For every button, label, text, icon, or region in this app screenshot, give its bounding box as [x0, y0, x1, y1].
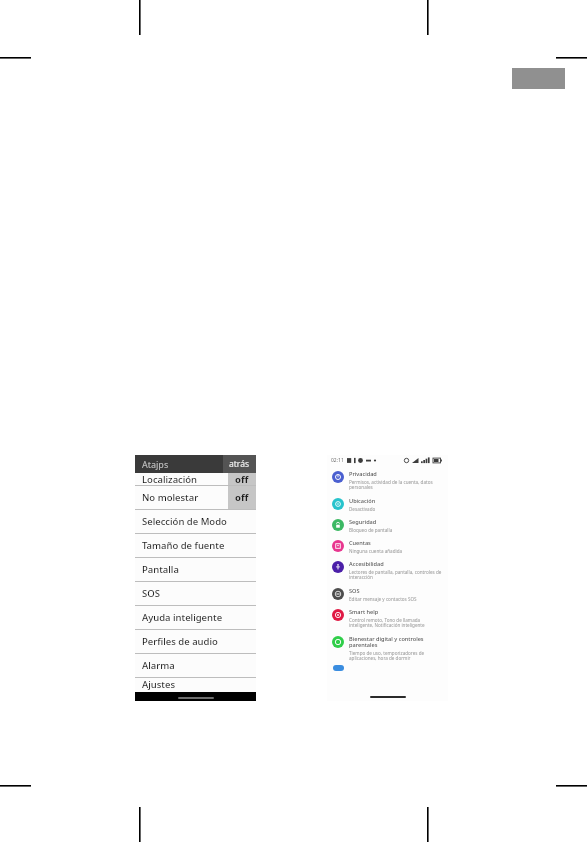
staticText: Ninguna cuenta añadida	[349, 548, 403, 554]
staticText: atrás	[229, 458, 250, 470]
staticText: off	[235, 473, 249, 485]
staticText: Privacidad	[349, 470, 377, 478]
staticText: SOS	[142, 587, 256, 600]
button[interactable]: Setting icon	[327, 515, 448, 536]
button[interactable]: Selección de Modo	[135, 510, 256, 533]
other: Setting icon	[332, 636, 344, 648]
staticText: Ayuda inteligente	[142, 611, 256, 624]
staticText: Ajustes	[142, 678, 256, 690]
button[interactable]: Setting icon	[327, 536, 448, 557]
button[interactable]: Alarma	[135, 654, 256, 677]
staticText: Tiempo de uso, temporizadores de aplicac…	[349, 650, 443, 662]
staticText: Alarma	[142, 659, 256, 672]
staticText: Accesibilidad	[349, 560, 384, 568]
staticText: Ubicación	[349, 497, 376, 505]
staticText: Seguridad	[349, 518, 377, 526]
button[interactable]: Pantalla	[135, 558, 256, 581]
button[interactable]: Setting icon	[327, 605, 448, 632]
button[interactable]: Perfiles de audio	[135, 630, 256, 653]
staticText: Bloqueo de pantalla	[349, 527, 393, 533]
other: Setting icon	[332, 609, 344, 621]
button[interactable]: Setting icon	[327, 557, 448, 584]
button[interactable]: Setting icon	[327, 584, 448, 605]
staticText: Bienestar digital y controles parentales	[349, 635, 443, 649]
staticText: Editar mensaje y contactos SOS	[349, 596, 417, 602]
button[interactable]: Tamaño de fuente	[135, 534, 256, 557]
button[interactable]: Ajustes	[135, 678, 256, 690]
staticText: off	[235, 491, 249, 504]
other: Setting icon	[332, 588, 344, 600]
other: Setting icon	[332, 561, 344, 573]
other: Setting icon	[332, 471, 344, 483]
staticText: Desactivado	[349, 506, 376, 512]
staticText: Control remoto, Tono de llamada intelige…	[349, 617, 443, 629]
other: Setting icon	[332, 498, 344, 510]
staticText: SOS	[349, 587, 360, 595]
other: Setting icon	[332, 519, 344, 531]
staticText: No molestar	[142, 491, 228, 504]
button[interactable]: Localización	[135, 473, 256, 485]
staticText: Lectores de pantalla, pantalla, controle…	[349, 569, 443, 581]
button[interactable]: Setting icon	[327, 467, 448, 494]
staticText: 02:11	[331, 457, 344, 464]
button[interactable]: Setting icon	[327, 494, 448, 515]
staticText: Atajps	[142, 458, 169, 470]
button[interactable]: No molestar	[135, 486, 256, 509]
staticText: Localización	[142, 473, 228, 485]
button[interactable]: SOS	[135, 582, 256, 605]
staticText: Cuentas	[349, 539, 371, 547]
other: Setting icon	[332, 540, 344, 552]
staticText: Tamaño de fuente	[142, 539, 256, 552]
button[interactable]: atrás	[223, 455, 256, 473]
button[interactable]: Ayuda inteligente	[135, 606, 256, 629]
staticText: Perfiles de audio	[142, 635, 256, 648]
staticText: Permisos, actividad de la cuenta, datos …	[349, 479, 443, 491]
staticText: Smart help	[349, 608, 379, 616]
staticText: Selección de Modo	[142, 515, 256, 528]
button[interactable]: Setting icon	[327, 632, 448, 665]
staticText: Pantalla	[142, 563, 256, 576]
